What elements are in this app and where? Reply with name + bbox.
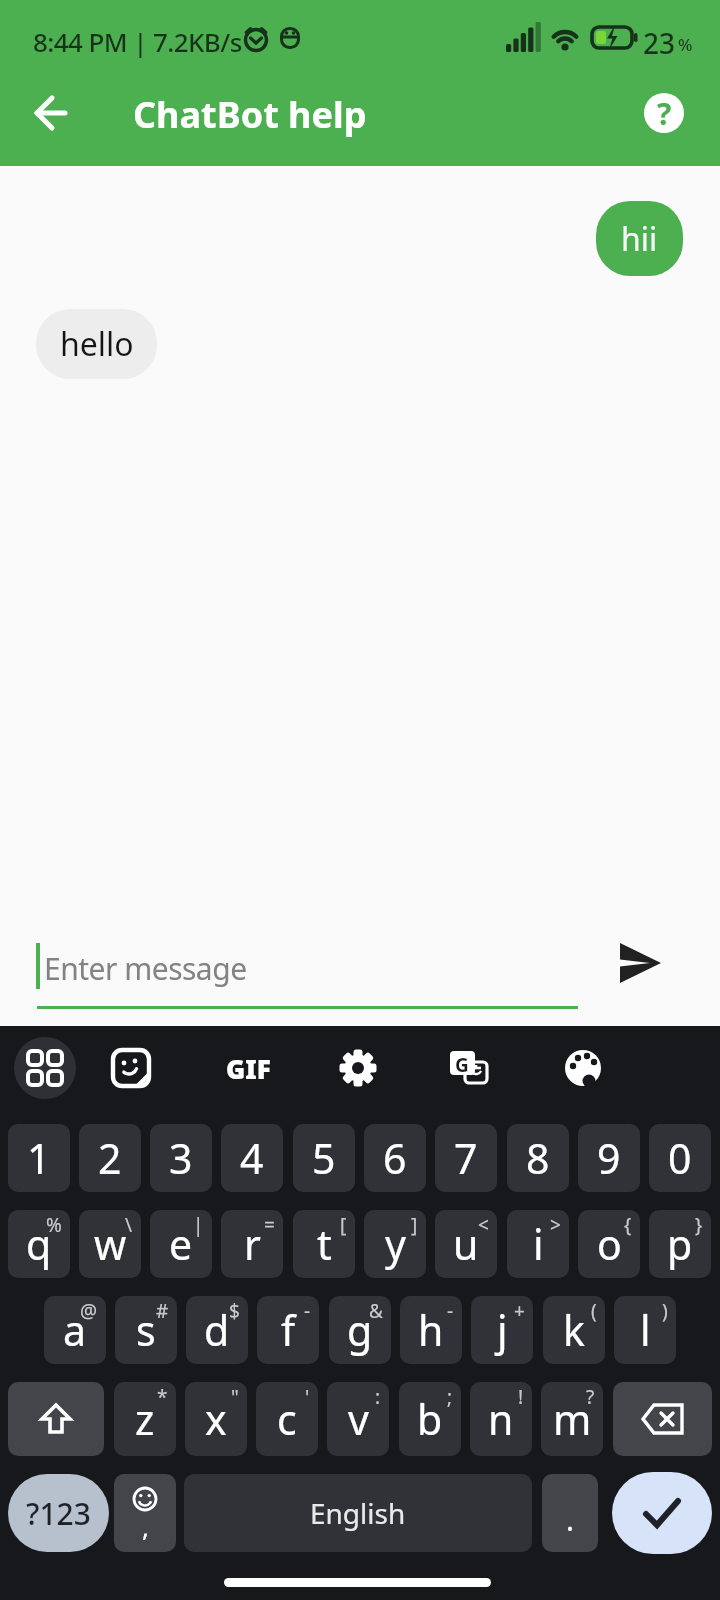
staticText: }: [695, 1212, 703, 1238]
button[interactable]: 3: [150, 1124, 212, 1192]
staticText: w: [94, 1216, 127, 1272]
button[interactable]: g: [329, 1296, 391, 1364]
button[interactable]: 4: [221, 1124, 283, 1192]
staticText: 23: [643, 24, 676, 62]
button[interactable]: G: [449, 1048, 489, 1088]
button[interactable]: GIF: [218, 1048, 278, 1088]
button[interactable]: ,: [114, 1474, 176, 1552]
staticText: G: [455, 1052, 469, 1078]
button[interactable]: 5: [293, 1124, 355, 1192]
staticText: m: [553, 1391, 592, 1447]
staticText: r: [244, 1216, 261, 1272]
button[interactable]: h: [400, 1296, 462, 1364]
button[interactable]: n: [470, 1382, 532, 1456]
button[interactable]: b: [399, 1382, 461, 1456]
button[interactable]: e: [150, 1210, 212, 1278]
staticText: &: [369, 1298, 383, 1324]
button[interactable]: [613, 1382, 712, 1456]
staticText: |: [193, 1212, 204, 1238]
button[interactable]: ?: [644, 93, 684, 133]
staticText: k: [563, 1302, 585, 1358]
staticText: i: [533, 1216, 544, 1272]
button[interactable]: 8: [507, 1124, 569, 1192]
staticText: v: [348, 1391, 369, 1447]
staticText: English: [310, 1494, 406, 1532]
button[interactable]: [612, 930, 672, 990]
button[interactable]: p: [649, 1210, 711, 1278]
staticText: <: [478, 1212, 489, 1238]
button[interactable]: [14, 1037, 76, 1099]
button[interactable]: hello: [36, 309, 157, 379]
button[interactable]: s: [115, 1296, 177, 1364]
button[interactable]: [111, 1048, 151, 1088]
staticText: z: [135, 1391, 155, 1447]
staticText: q: [26, 1216, 52, 1272]
staticText: 8:44 PM | 7.2KB/s: [33, 24, 242, 59]
staticText: ,: [142, 1509, 149, 1544]
button[interactable]: d: [186, 1296, 248, 1364]
staticText: a: [63, 1302, 87, 1358]
staticText: 4: [240, 1130, 264, 1186]
button[interactable]: z: [114, 1382, 176, 1456]
button[interactable]: m: [541, 1382, 603, 1456]
button[interactable]: hii: [596, 201, 683, 276]
staticText: GIF: [226, 1051, 271, 1086]
button[interactable]: ?123: [8, 1474, 109, 1552]
button[interactable]: k: [543, 1296, 605, 1364]
button[interactable]: [563, 1048, 603, 1088]
button[interactable]: x: [185, 1382, 247, 1456]
button[interactable]: v: [327, 1382, 389, 1456]
staticText: 8: [526, 1130, 550, 1186]
button[interactable]: [24, 92, 68, 136]
button[interactable]: i: [507, 1210, 569, 1278]
button[interactable]: w: [79, 1210, 141, 1278]
staticText: h: [418, 1302, 444, 1358]
staticText: +: [514, 1298, 525, 1324]
button[interactable]: [8, 1382, 104, 1456]
staticText: g: [347, 1302, 373, 1358]
staticText: hello: [60, 322, 134, 366]
staticText: ): [662, 1298, 668, 1324]
staticText: 7: [454, 1130, 478, 1186]
button[interactable]: 2: [79, 1124, 141, 1192]
staticText: b: [417, 1391, 443, 1447]
staticText: p: [667, 1216, 693, 1272]
staticText: 1: [27, 1130, 51, 1186]
button[interactable]: .: [542, 1474, 598, 1552]
button[interactable]: u: [435, 1210, 497, 1278]
button[interactable]: [612, 1472, 712, 1554]
button[interactable]: 9: [578, 1124, 640, 1192]
button[interactable]: r: [221, 1210, 283, 1278]
button[interactable]: t: [293, 1210, 355, 1278]
staticText: ?: [657, 93, 672, 133]
button[interactable]: l: [614, 1296, 676, 1364]
staticText: hii: [621, 217, 658, 261]
button[interactable]: y: [364, 1210, 426, 1278]
staticText: =: [264, 1212, 275, 1238]
button[interactable]: j: [471, 1296, 533, 1364]
button[interactable]: f: [257, 1296, 319, 1364]
staticText: -: [447, 1298, 454, 1324]
button[interactable]: [338, 1048, 378, 1088]
staticText: {: [624, 1212, 632, 1238]
button[interactable]: q: [8, 1210, 70, 1278]
staticText: :: [375, 1384, 381, 1410]
staticText: %: [46, 1212, 62, 1238]
staticText: j: [497, 1302, 508, 1358]
button[interactable]: o: [578, 1210, 640, 1278]
button[interactable]: 6: [364, 1124, 426, 1192]
button[interactable]: 1: [8, 1124, 70, 1192]
button[interactable]: 0: [649, 1124, 711, 1192]
staticText: @: [80, 1298, 98, 1324]
staticText: Enter message: [44, 948, 247, 989]
button[interactable]: c: [256, 1382, 318, 1456]
button[interactable]: a: [44, 1296, 106, 1364]
staticText: ?123: [26, 1493, 91, 1534]
staticText: ChatBot help: [133, 90, 367, 139]
button[interactable]: 7: [435, 1124, 497, 1192]
staticText: d: [204, 1302, 230, 1358]
staticText: *: [157, 1384, 168, 1410]
staticText: %: [678, 33, 693, 56]
button[interactable]: English: [184, 1474, 532, 1552]
staticText: y: [385, 1216, 406, 1272]
